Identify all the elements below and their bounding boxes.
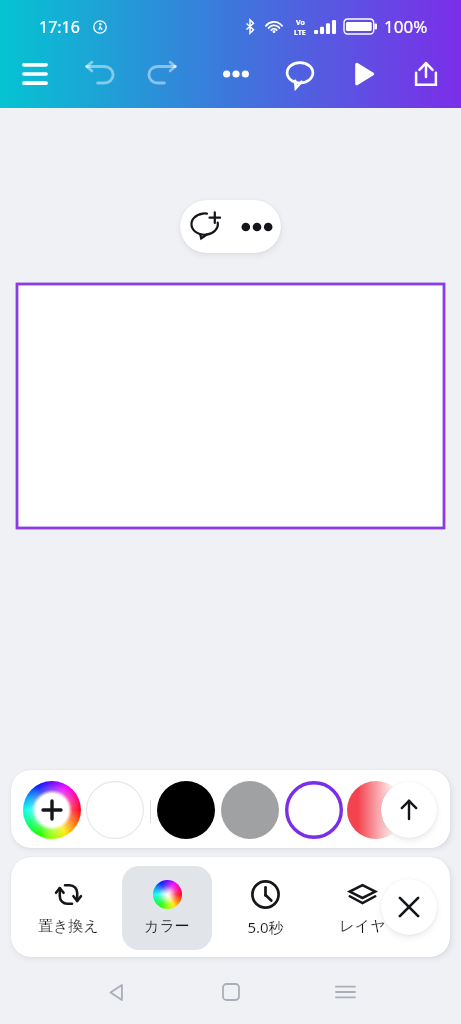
button[interactable]: Color swatch	[86, 781, 144, 839]
button[interactable]: 5.0秒	[220, 866, 310, 950]
staticText: LTE	[294, 28, 306, 35]
button[interactable]: Comments	[276, 50, 324, 98]
button[interactable]: レイヤ	[317, 866, 407, 950]
staticText: 100%	[384, 15, 428, 38]
staticText: 置き換え	[38, 917, 99, 936]
button[interactable]: Back	[92, 968, 140, 1016]
button[interactable]: White selected	[285, 781, 343, 839]
button[interactable]: Home	[207, 968, 255, 1016]
button[interactable]: Red	[347, 781, 405, 839]
staticText: 17:16	[39, 16, 80, 38]
button[interactable]: Share	[402, 50, 450, 98]
button[interactable]: Close	[381, 879, 437, 935]
button[interactable]: More	[232, 200, 281, 253]
staticText: 5.0秒	[247, 917, 284, 937]
button[interactable]: 置き換え	[23, 866, 113, 950]
staticText: Vo	[296, 18, 305, 28]
button[interactable]: Play	[340, 50, 388, 98]
button[interactable]: Show more colors	[381, 782, 437, 838]
button[interactable]: カラー	[122, 866, 212, 950]
button[interactable]: Undo	[76, 50, 124, 98]
button[interactable]: Color swatch	[157, 781, 215, 839]
button[interactable]: Menu	[11, 50, 59, 98]
button[interactable]: Add comment	[180, 200, 232, 253]
button[interactable]: Redo	[138, 50, 186, 98]
staticText: レイヤ	[339, 917, 386, 936]
staticText: カラー	[144, 917, 190, 936]
button[interactable]: Color swatch	[221, 781, 279, 839]
button[interactable]: Recents	[321, 968, 369, 1016]
button[interactable]: More options	[212, 50, 260, 98]
button[interactable]: Add color	[23, 781, 81, 839]
